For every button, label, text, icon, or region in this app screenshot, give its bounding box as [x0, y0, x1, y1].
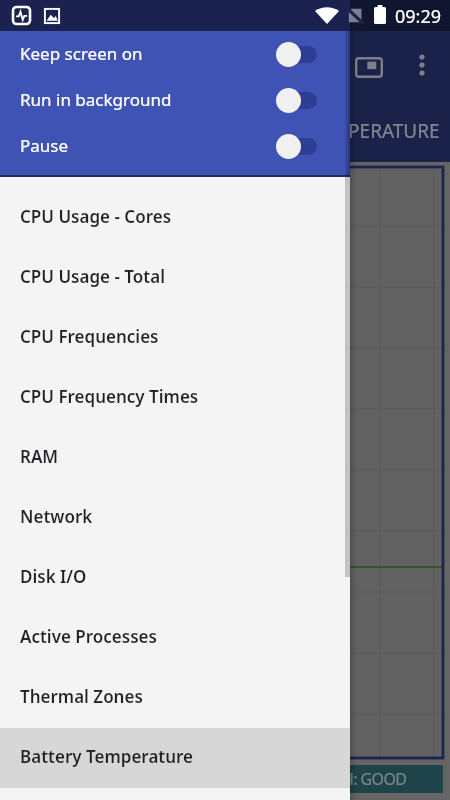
staticText: 09:29 [395, 4, 442, 29]
button[interactable]: Run in background [0, 77, 350, 123]
staticText: CPU Usage - Total [20, 265, 165, 288]
button[interactable]: More options [399, 42, 445, 88]
button[interactable]: Thermal Zones [0, 668, 350, 728]
button[interactable]: CPU Usage - Cores [0, 188, 350, 248]
button[interactable]: RAM [0, 428, 350, 488]
staticText: Battery Temperature [20, 745, 194, 768]
staticText: CPU Frequencies [20, 325, 159, 348]
button[interactable]: Battery Temperature [0, 728, 350, 788]
staticText: Run in background [20, 88, 172, 111]
button[interactable]: Network [0, 488, 350, 548]
staticText: Thermal Zones [20, 685, 143, 708]
staticText: Pause [20, 134, 69, 157]
staticText: Network [20, 505, 93, 528]
staticText: Keep screen on [20, 42, 143, 65]
staticText: BATTERY TEMPERATURE [227, 118, 440, 144]
button[interactable]: Pause [0, 123, 350, 169]
button[interactable]: CPU Frequencies [0, 308, 350, 368]
staticText: HEALTH: GOOD [297, 768, 407, 790]
button[interactable]: Disk I/O [0, 548, 350, 608]
staticText: CPU Usage - Cores [20, 205, 172, 228]
button[interactable]: Picture in picture [346, 44, 392, 90]
staticText: RAM [20, 445, 59, 468]
button[interactable]: Active Processes [0, 608, 350, 668]
staticText: Active Processes [20, 625, 157, 648]
button[interactable]: CPU Usage - Total [0, 248, 350, 308]
button[interactable]: CPU Frequency Times [0, 368, 350, 428]
staticText: Disk I/O [20, 565, 87, 588]
staticText: CPU Frequency Times [20, 385, 199, 408]
button[interactable]: Keep screen on [0, 31, 350, 77]
